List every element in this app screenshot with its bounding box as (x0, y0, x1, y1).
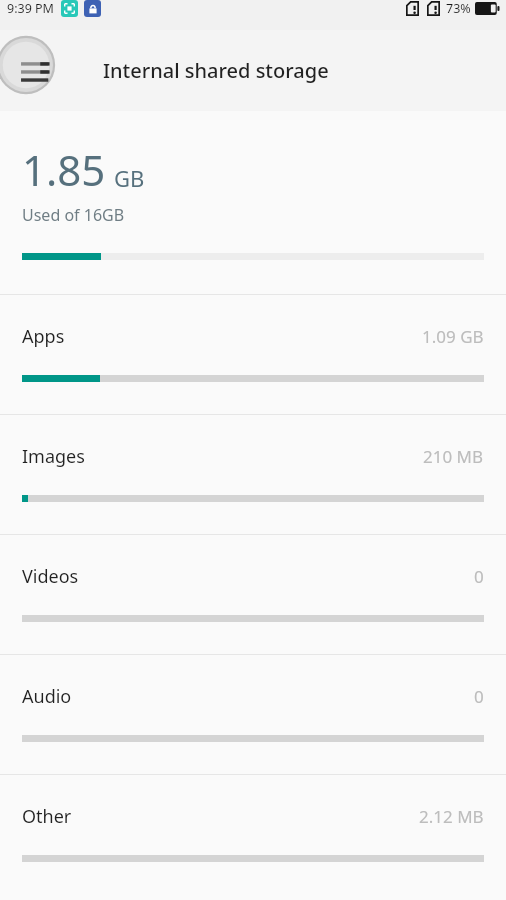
button[interactable]: Internal shared storage (0, 30, 506, 111)
button[interactable]: Audio (0, 655, 506, 774)
staticText: Internal shared storage (103, 57, 329, 84)
staticText: 1.09 GB (422, 325, 484, 348)
staticText: 210 MB (423, 445, 484, 468)
staticText: 0 (474, 685, 484, 708)
staticText: GB (114, 163, 145, 193)
staticText: Apps (22, 324, 65, 349)
staticText: Used of 16GB (22, 204, 125, 226)
button[interactable]: Apps (0, 295, 506, 414)
button[interactable]: 1.85 (0, 111, 506, 294)
staticText: 0 (474, 565, 484, 588)
staticText: Other (22, 804, 72, 829)
button[interactable]: Videos (0, 535, 506, 654)
button[interactable]: Other (0, 775, 506, 894)
staticText: Audio (22, 684, 72, 709)
staticText: 2.12 MB (419, 805, 484, 828)
button[interactable]: Images (0, 415, 506, 534)
button[interactable]: Assistive touch menu (0, 34, 57, 96)
staticText: Images (22, 444, 85, 469)
staticText: Videos (22, 564, 79, 589)
staticText: 9:39 PM (7, 0, 54, 17)
staticText: 1.85 (22, 141, 106, 198)
staticText: 73% (446, 0, 471, 17)
